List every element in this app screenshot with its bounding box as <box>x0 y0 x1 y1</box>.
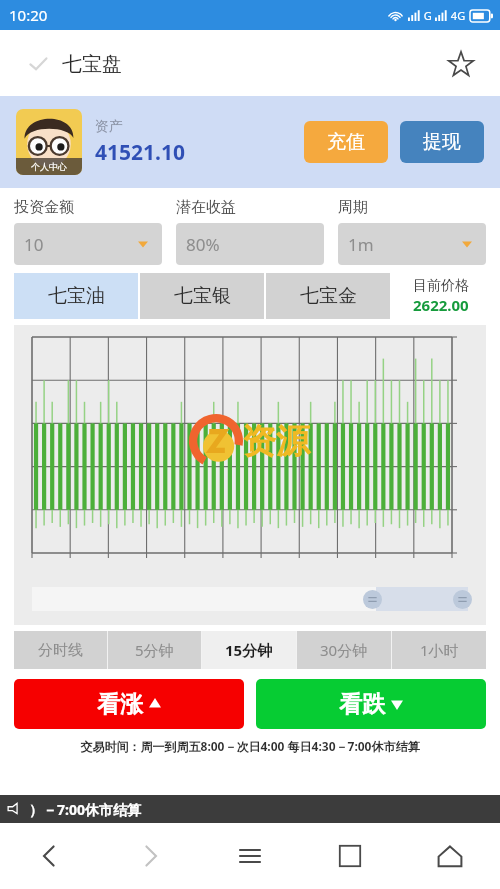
staticText: 资产 <box>95 118 123 136</box>
button[interactable]: 1m <box>338 223 486 265</box>
button[interactable]: 10 <box>14 223 162 265</box>
staticText: 充值 <box>327 130 365 154</box>
staticText: 目前价格 <box>413 277 469 295</box>
staticText: 交易时间：周一到周五8:00－次日4:00 每日4:30－7:00休市结算 <box>0 738 500 754</box>
staticText: 1小时 <box>420 640 459 660</box>
staticText: 2622.00 <box>413 295 469 315</box>
staticText: 七宝金 <box>300 284 357 308</box>
staticText: ）－7:00休市结算 <box>29 800 141 819</box>
button[interactable]: 七宝盘 <box>14 38 486 90</box>
button[interactable]: 5分钟 <box>108 631 201 669</box>
button[interactable]: 分时线 <box>14 631 107 669</box>
staticText: 资源 <box>242 420 310 463</box>
staticText: 15分钟 <box>225 640 273 660</box>
staticText: 10 <box>24 233 44 256</box>
staticText: 潜在收益 <box>176 198 236 217</box>
button[interactable]: 七宝银 <box>140 273 264 319</box>
staticText: 10:20 <box>9 5 48 25</box>
button[interactable]: Back <box>0 823 100 889</box>
staticText: 提现 <box>423 130 461 154</box>
staticText: 七宝银 <box>174 284 231 308</box>
button[interactable]: Range end <box>453 590 472 609</box>
staticText: 41521.10 <box>95 138 185 167</box>
button[interactable]: Menu <box>200 823 300 889</box>
staticText: 投资金额 <box>14 198 74 217</box>
staticText: 看跌 <box>339 690 385 719</box>
staticText: 5分钟 <box>135 640 174 660</box>
button[interactable]: Favourite <box>440 43 482 85</box>
staticText: 分时线 <box>38 641 83 660</box>
button[interactable]: 30分钟 <box>297 631 391 669</box>
button[interactable]: Personal centre <box>16 109 82 175</box>
button[interactable]: Home <box>400 823 500 889</box>
button[interactable]: 充值 <box>304 121 388 163</box>
button[interactable]: 看涨 <box>14 679 244 729</box>
button[interactable]: 七宝金 <box>266 273 390 319</box>
button[interactable]: Range start <box>363 590 382 609</box>
button[interactable]: 七宝油 <box>14 273 138 319</box>
staticText: 七宝油 <box>48 284 105 308</box>
button[interactable]: 1小时 <box>392 631 486 669</box>
staticText: 1m <box>348 233 374 256</box>
button[interactable]: 提现 <box>400 121 484 163</box>
staticText: 80% <box>186 233 220 256</box>
staticText: 看涨 <box>97 690 143 719</box>
staticText: 4G <box>448 8 466 23</box>
staticText: 30分钟 <box>320 640 368 660</box>
staticText: G <box>421 8 432 23</box>
button[interactable]: 看跌 <box>256 679 486 729</box>
staticText: 七宝盘 <box>62 52 122 77</box>
button[interactable]: Tabs <box>300 823 400 889</box>
button[interactable]: 80% <box>176 223 324 265</box>
button[interactable]: Forward <box>100 823 200 889</box>
staticText: 周期 <box>338 198 368 217</box>
button[interactable]: 15分钟 <box>202 631 296 669</box>
staticText: 个人中心 <box>31 161 67 172</box>
